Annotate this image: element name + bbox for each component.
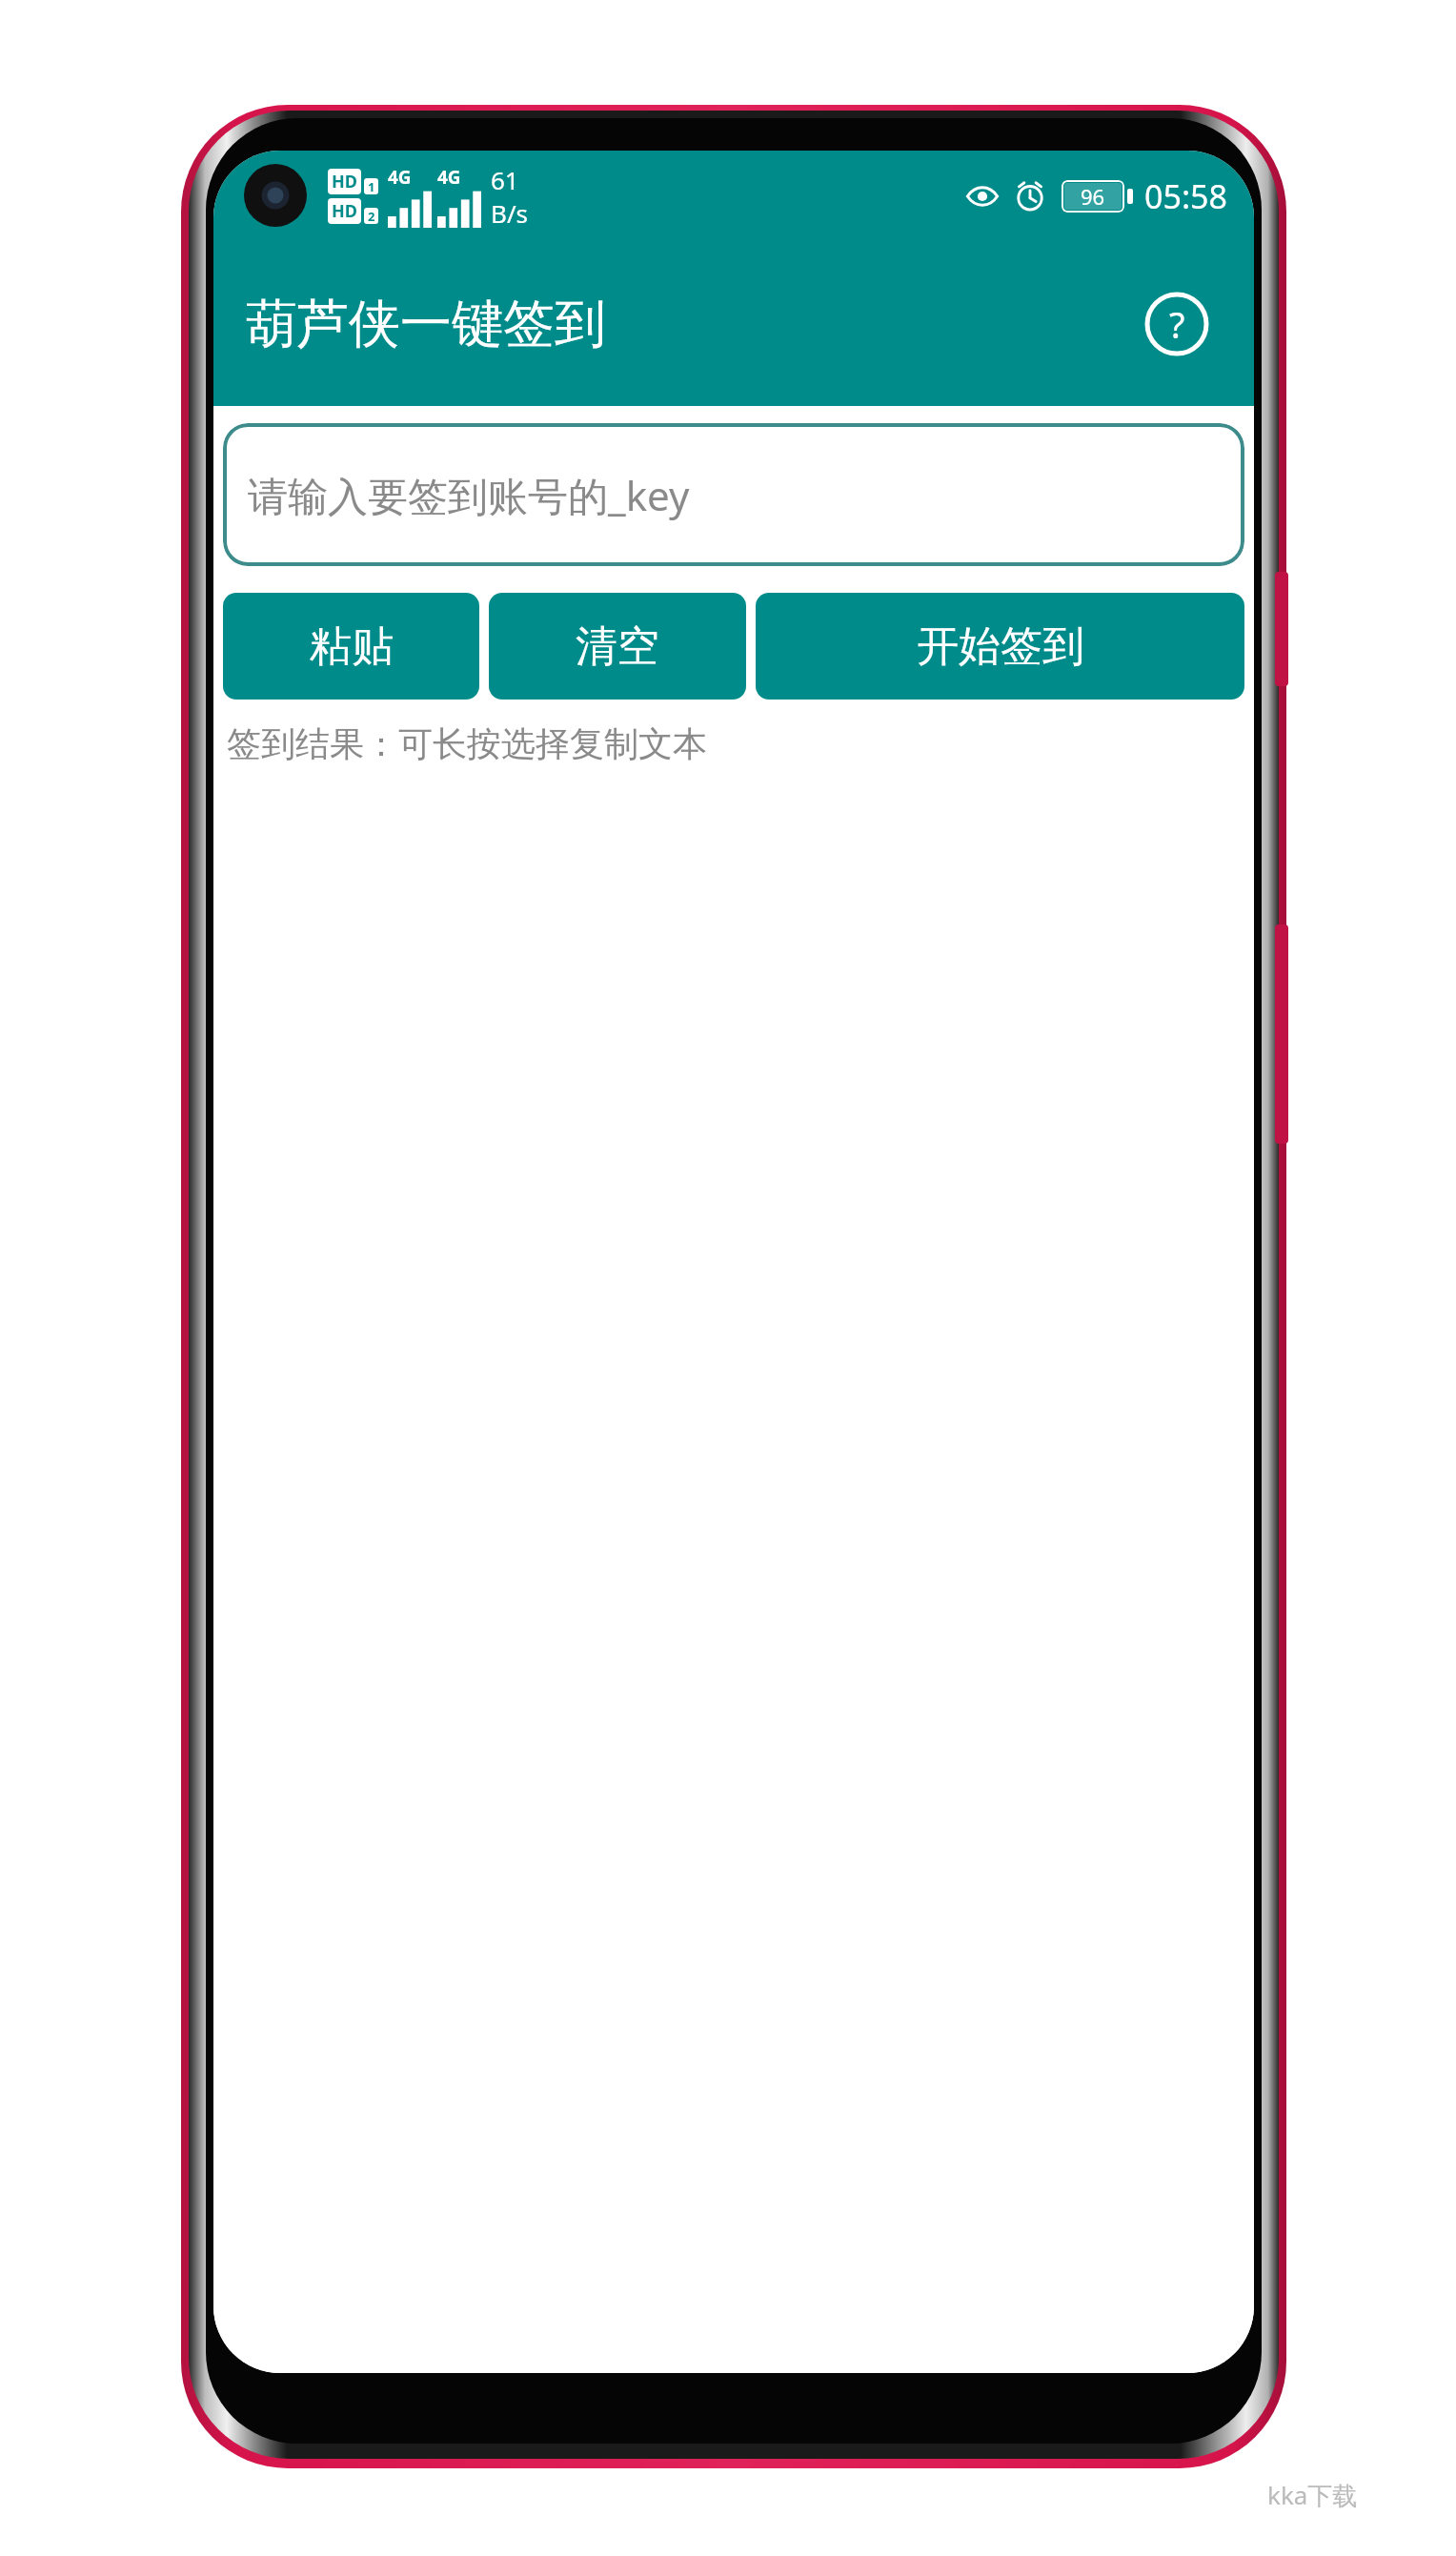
staticText: B/s [491, 196, 529, 230]
staticText: 4G [437, 165, 461, 190]
button[interactable]: Help [1142, 289, 1212, 359]
staticText: 请输入要签到账号的_key [248, 468, 690, 522]
button[interactable]: 请输入要签到账号的_key [223, 423, 1244, 566]
button[interactable]: 开始签到 [756, 593, 1244, 700]
staticText: 开始签到 [917, 620, 1084, 673]
staticText: 1 [368, 178, 375, 194]
staticText: kka下载 [1267, 2478, 1358, 2512]
staticText: 签到结果：可长按选择复制文本 [227, 722, 707, 765]
button[interactable]: 粘贴 [223, 593, 479, 700]
staticText: 清空 [576, 620, 659, 673]
staticText: 96 [1081, 182, 1105, 211]
button[interactable]: 清空 [489, 593, 746, 700]
staticText: HD [332, 170, 357, 193]
staticText: 05:58 [1144, 174, 1227, 218]
staticText: HD [332, 199, 357, 223]
staticText: 粘贴 [310, 620, 394, 673]
staticText: 4G [388, 165, 412, 190]
staticText: 2 [368, 208, 375, 224]
staticText: ? [1169, 299, 1185, 349]
staticText: 61 [491, 163, 519, 196]
staticText: 葫芦侠一键签到 [246, 292, 606, 356]
